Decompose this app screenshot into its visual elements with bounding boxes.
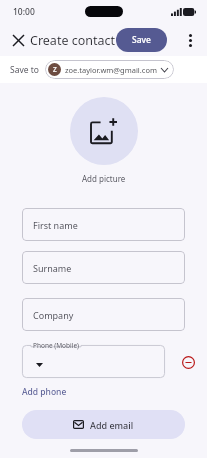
staticText: Phone (Mobile) — [33, 341, 80, 350]
button[interactable]: First name — [22, 208, 185, 241]
button[interactable]: More options — [179, 29, 201, 51]
staticText: First name — [33, 219, 78, 231]
button[interactable]: Add phone — [22, 384, 67, 400]
button[interactable]: Remove phone — [177, 351, 199, 373]
other: Phone type — [34, 360, 44, 370]
staticText: Surname — [33, 262, 72, 274]
button[interactable]: Add email — [22, 410, 185, 439]
staticText: Z — [53, 65, 57, 74]
staticText: Create contact — [30, 32, 116, 49]
staticText: zoe.taylor.wm@gmail.com — [65, 65, 157, 75]
staticText: Save to — [10, 64, 39, 76]
button[interactable]: Surname — [22, 251, 185, 284]
staticText: Company — [33, 309, 74, 321]
staticText: Add picture — [82, 173, 126, 184]
button[interactable]: Save — [116, 28, 167, 52]
button[interactable]: Add picture — [70, 97, 138, 165]
button[interactable]: Phone (Mobile) — [22, 345, 165, 378]
staticText: 10:00 — [13, 6, 35, 18]
button[interactable]: Close — [7, 29, 29, 51]
button[interactable]: Z — [45, 60, 174, 79]
staticText: Save — [132, 34, 151, 46]
button[interactable]: Company — [22, 298, 185, 331]
staticText: Add email — [90, 419, 134, 431]
